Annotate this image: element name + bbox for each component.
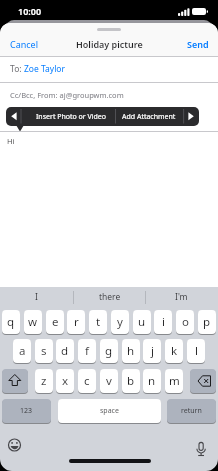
- button[interactable]: return: [167, 399, 216, 423]
- staticText: y: [117, 314, 123, 330]
- staticText: n: [148, 373, 156, 389]
- button[interactable]: [190, 369, 216, 393]
- staticText: Zoe Taylor: [24, 63, 66, 75]
- staticText: e: [52, 314, 59, 330]
- staticText: there: [99, 291, 121, 303]
- staticText: a: [19, 343, 26, 359]
- staticText: 123: [20, 406, 33, 416]
- button[interactable]: q: [2, 310, 20, 334]
- button[interactable]: a: [13, 339, 31, 363]
- button[interactable]: [193, 438, 210, 457]
- button[interactable]: b: [122, 369, 140, 393]
- staticText: s: [41, 343, 47, 359]
- staticText: w: [28, 314, 38, 330]
- button[interactable]: t: [89, 310, 107, 334]
- staticText: r: [74, 314, 79, 330]
- staticText: q: [7, 314, 15, 330]
- button[interactable]: f: [78, 339, 96, 363]
- button[interactable]: h: [122, 339, 140, 363]
- staticText: b: [127, 373, 135, 389]
- button[interactable]: Add Attachment: [115, 107, 183, 126]
- button[interactable]: o: [176, 310, 194, 334]
- staticText: f: [85, 343, 89, 359]
- button[interactable]: w: [24, 310, 42, 334]
- staticText: m: [169, 373, 180, 389]
- staticText: i: [162, 314, 165, 330]
- staticText: Insert Photo or Video: [36, 112, 107, 122]
- staticText: Cc/Bcc, From: aj@groupwm.com: [10, 90, 124, 100]
- staticText: c: [84, 373, 90, 389]
- button[interactable]: n: [143, 369, 161, 393]
- button[interactable]: [0, 82, 218, 105]
- button[interactable]: c: [78, 369, 96, 393]
- staticText: Holiday picture: [76, 38, 143, 50]
- staticText: j: [151, 343, 154, 359]
- staticText: d: [61, 343, 69, 359]
- button[interactable]: e: [46, 310, 64, 334]
- button[interactable]: I'm: [145, 287, 218, 307]
- staticText: Send: [187, 38, 209, 50]
- staticText: u: [138, 314, 146, 330]
- button[interactable]: Send: [169, 36, 209, 52]
- staticText: k: [171, 343, 178, 359]
- button[interactable]: I: [0, 287, 73, 307]
- staticText: I'm: [175, 291, 188, 303]
- button[interactable]: l: [187, 339, 205, 363]
- button[interactable]: there: [73, 287, 146, 307]
- button[interactable]: [0, 56, 218, 81]
- staticText: t: [96, 314, 101, 330]
- button[interactable]: s: [35, 339, 53, 363]
- staticText: p: [203, 314, 211, 330]
- staticText: return: [181, 406, 202, 416]
- button[interactable]: g: [100, 339, 118, 363]
- staticText: x: [62, 373, 69, 389]
- button[interactable]: [6, 438, 23, 453]
- button[interactable]: y: [111, 310, 129, 334]
- staticText: space: [100, 406, 119, 416]
- staticText: Hi: [7, 136, 15, 146]
- button[interactable]: space: [58, 399, 161, 423]
- staticText: h: [127, 343, 135, 359]
- staticText: o: [182, 314, 189, 330]
- button[interactable]: m: [165, 369, 183, 393]
- button[interactable]: [2, 369, 28, 393]
- button[interactable]: x: [56, 369, 74, 393]
- button[interactable]: r: [67, 310, 85, 334]
- staticText: g: [105, 343, 113, 359]
- button[interactable]: 123: [2, 399, 51, 423]
- staticText: l: [195, 343, 198, 359]
- button[interactable]: k: [165, 339, 183, 363]
- button[interactable]: z: [35, 369, 53, 393]
- button[interactable]: i: [154, 310, 172, 334]
- staticText: 10:00: [18, 5, 42, 17]
- staticText: I: [35, 291, 38, 303]
- staticText: z: [41, 373, 47, 389]
- button[interactable]: d: [56, 339, 74, 363]
- button[interactable]: Insert Photo or Video: [27, 107, 116, 126]
- staticText: v: [106, 373, 112, 389]
- button[interactable]: u: [133, 310, 151, 334]
- button[interactable]: p: [198, 310, 216, 334]
- button[interactable]: v: [100, 369, 118, 393]
- button[interactable]: Cancel: [10, 36, 50, 52]
- staticText: Cancel: [10, 38, 39, 50]
- button[interactable]: j: [143, 339, 161, 363]
- staticText: To:: [10, 63, 22, 75]
- staticText: Add Attachment: [122, 112, 176, 122]
